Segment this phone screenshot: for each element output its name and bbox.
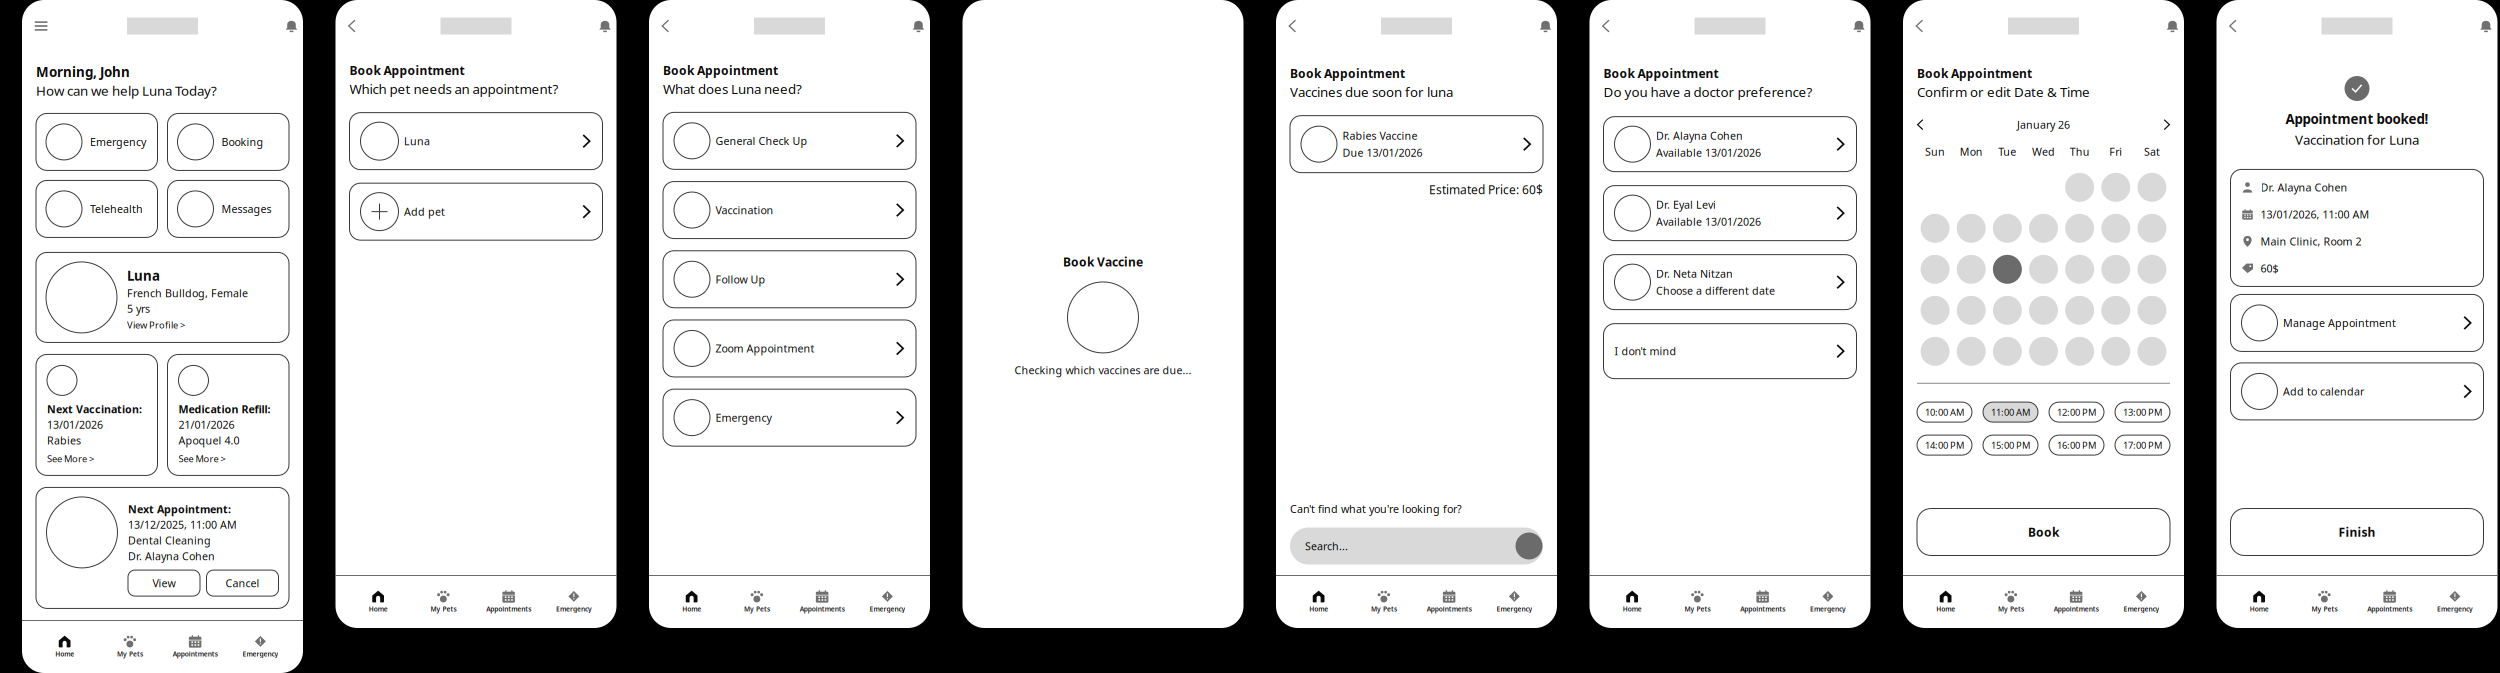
button[interactable]: Dr. Neta Nitzan: [1603, 255, 1856, 310]
button[interactable]: Follow Up: [663, 251, 916, 308]
button[interactable]: Notifications: [899, 15, 925, 37]
button[interactable]: Appointments: [1730, 590, 1795, 613]
button[interactable]: Appointments: [476, 590, 541, 613]
button[interactable]: Home: [345, 590, 411, 613]
staticText: How can we help Luna Today?: [36, 82, 217, 99]
staticText: Dr. Neta Nitzan: [1656, 266, 1733, 281]
button[interactable]: Luna: [349, 113, 602, 170]
button[interactable]: Zoom Appointment: [663, 320, 916, 377]
button[interactable]: Luna: [36, 252, 289, 342]
staticText: 13/01/2026: [47, 418, 103, 432]
staticText: Available 13/01/2026: [1656, 215, 1761, 229]
button[interactable]: Emergency: [2422, 590, 2487, 613]
button[interactable]: Emergency: [2109, 590, 2174, 613]
button[interactable]: Notifications: [272, 15, 298, 37]
button[interactable]: Emergency: [1795, 590, 1860, 613]
button[interactable]: Emergency: [228, 635, 293, 658]
button[interactable]: Notifications: [1839, 15, 1865, 37]
staticText: My Pets: [430, 604, 456, 613]
button[interactable]: Notifications: [2153, 15, 2179, 37]
button[interactable]: Cancel: [206, 570, 278, 596]
button[interactable]: Home: [659, 590, 724, 613]
button[interactable]: Emergency: [1482, 590, 1547, 613]
button[interactable]: Home: [1913, 590, 1978, 613]
button[interactable]: General Check Up: [663, 112, 916, 169]
button[interactable]: My Pets: [1351, 590, 1416, 613]
button[interactable]: Back: [1916, 15, 1942, 37]
button[interactable]: Book: [1917, 508, 2170, 555]
staticText: Next Appointment:: [128, 502, 231, 516]
staticText: See More >: [47, 452, 94, 465]
button[interactable]: Back: [1602, 15, 1628, 37]
staticText: Book Appointment: [1603, 65, 1718, 81]
button[interactable]: Back: [2229, 15, 2255, 37]
staticText: Thu: [2070, 145, 2090, 159]
staticText: Which pet needs an appointment?: [349, 80, 558, 98]
button[interactable]: 16:00 PM: [2049, 435, 2104, 455]
button[interactable]: Home: [2226, 590, 2292, 613]
button[interactable]: Home: [32, 635, 97, 658]
button[interactable]: Next month: [2154, 117, 2170, 133]
button[interactable]: Back: [662, 15, 688, 37]
button[interactable]: Appointments: [789, 590, 855, 613]
button[interactable]: Add to calendar: [2230, 363, 2483, 420]
button[interactable]: Back: [1289, 15, 1315, 37]
staticText: Sat: [2144, 145, 2160, 159]
button[interactable]: Search...: [1290, 527, 1543, 564]
button[interactable]: Dr. Eyal Levi: [1603, 186, 1856, 241]
staticText: January 26: [2017, 118, 2070, 132]
staticText: Morning, John: [36, 63, 130, 81]
button[interactable]: My Pets: [1665, 590, 1730, 613]
button[interactable]: Messages: [167, 180, 289, 237]
button[interactable]: My Pets: [1978, 590, 2043, 613]
staticText: 5 yrs: [127, 302, 150, 316]
button[interactable]: My Pets: [411, 590, 476, 613]
button[interactable]: 10:00 AM: [1917, 402, 1972, 422]
button[interactable]: My Pets: [724, 590, 789, 613]
button[interactable]: 11:00 AM: [1983, 402, 2038, 422]
staticText: Book Appointment: [1917, 65, 2032, 81]
button[interactable]: Notifications: [1526, 15, 1552, 37]
button[interactable]: Home: [1286, 590, 1351, 613]
button[interactable]: My Pets: [2292, 590, 2357, 613]
staticText: Rabies: [47, 433, 81, 447]
button[interactable]: Notifications: [2466, 15, 2492, 37]
staticText: Dr. Alayna Cohen: [128, 549, 215, 563]
staticText: Dr. Alayna Cohen: [1656, 128, 1743, 143]
button[interactable]: Appointments: [162, 635, 228, 658]
staticText: 16:00 PM: [2057, 439, 2096, 451]
button[interactable]: Emergency: [541, 590, 606, 613]
button[interactable]: Booking: [167, 113, 289, 170]
button[interactable]: 12:00 PM: [2049, 402, 2104, 422]
button[interactable]: Menu: [35, 15, 61, 37]
button[interactable]: Previous month: [1917, 117, 1933, 133]
staticText: Luna: [127, 267, 160, 284]
button[interactable]: Emergency: [855, 590, 920, 613]
button[interactable]: 13:00 PM: [2115, 402, 2170, 422]
button[interactable]: Add pet: [349, 183, 602, 240]
button[interactable]: 15:00 PM: [1983, 435, 2038, 455]
button[interactable]: Appointments: [2043, 590, 2109, 613]
staticText: My Pets: [117, 649, 143, 658]
button[interactable]: Appointments: [2357, 590, 2422, 613]
button[interactable]: Rabies Vaccine: [1290, 116, 1543, 173]
button[interactable]: I don't mind: [1603, 324, 1856, 379]
button[interactable]: View: [128, 570, 200, 596]
button[interactable]: Telehealth: [36, 180, 157, 237]
staticText: View Profile >: [127, 319, 185, 331]
button[interactable]: Finish: [2230, 508, 2483, 555]
button[interactable]: Appointments: [1416, 590, 1482, 613]
button[interactable]: Emergency: [663, 389, 916, 446]
button[interactable]: Vaccination: [663, 181, 916, 238]
button[interactable]: 17:00 PM: [2115, 435, 2170, 455]
button[interactable]: Manage Appointment: [2230, 294, 2483, 351]
staticText: 13:00 PM: [2123, 406, 2162, 418]
button[interactable]: 14:00 PM: [1917, 435, 1972, 455]
button[interactable]: Home: [1599, 590, 1665, 613]
button[interactable]: Dr. Alayna Cohen: [1603, 117, 1856, 172]
button[interactable]: Emergency: [36, 113, 157, 170]
button[interactable]: My Pets: [97, 635, 162, 658]
staticText: 10:00 AM: [1925, 406, 1964, 418]
button[interactable]: Notifications: [585, 15, 611, 37]
button[interactable]: Back: [348, 15, 374, 37]
